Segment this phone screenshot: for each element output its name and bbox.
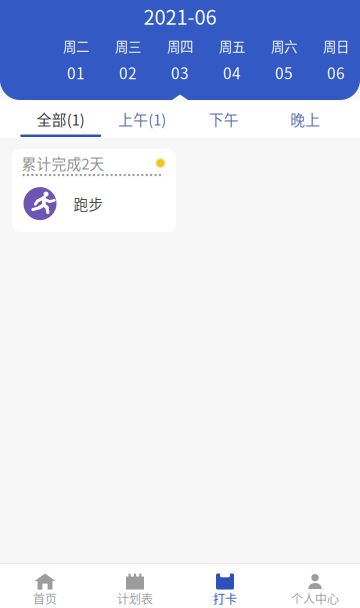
staticText: 上午(1) [118,108,166,130]
button[interactable]: 周六 [258,39,310,79]
button[interactable]: 晚上 [264,100,346,138]
staticText: 周二 [63,36,89,56]
staticText: 晚上 [290,108,320,130]
staticText: 跑步 [73,193,103,214]
button[interactable]: 全部(1) [20,100,101,138]
button[interactable]: 下午 [183,100,264,138]
staticText: 04 [223,61,241,84]
button[interactable]: 周二 [50,39,102,79]
button[interactable]: 周三 [102,39,154,79]
staticText: 2021-06 [143,1,216,30]
staticText: 累计完成2天 [21,152,104,174]
staticText: 周六 [271,36,297,56]
staticText: 06 [327,61,345,84]
staticText: 周三 [115,36,141,56]
staticText: 下午 [209,108,239,130]
button[interactable]: 上午(1) [101,100,183,138]
staticText: 02 [119,61,137,84]
button[interactable]: 计划表 [90,563,180,607]
staticText: 打卡 [213,590,237,607]
staticText: 计划表 [117,590,153,607]
button[interactable]: 周四 [154,39,206,79]
staticText: 个人中心 [291,590,339,607]
button[interactable]: 打卡 [180,563,270,607]
staticText: 全部(1) [37,108,85,130]
staticText: 01 [67,61,85,84]
staticText: 首页 [33,590,57,607]
staticText: 周日 [323,36,349,56]
button[interactable]: 周日 [310,39,360,79]
staticText: 周五 [219,36,245,56]
button[interactable]: 个人中心 [270,563,360,607]
staticText: 03 [171,61,189,84]
staticText: 05 [275,61,293,84]
button[interactable]: 首页 [0,563,90,607]
button[interactable]: 累计完成2天 [12,149,176,232]
staticText: 周四 [167,36,193,56]
button[interactable]: 周五 [206,39,258,79]
